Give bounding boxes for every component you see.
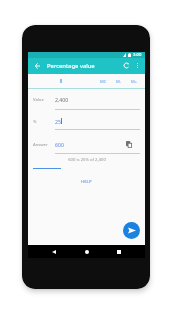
staticText: HELP (81, 178, 92, 184)
button[interactable] (28, 92, 145, 107)
staticText: 600 (55, 141, 64, 148)
staticText: % (33, 119, 37, 125)
staticText: 25 (55, 118, 61, 125)
button[interactable]: M- (113, 76, 125, 88)
button[interactable]: Back (31, 60, 43, 72)
button[interactable]: HELP (77, 176, 96, 186)
button[interactable]: Recents (113, 246, 125, 258)
staticText: Percentage value (47, 62, 95, 70)
staticText: M+ (131, 79, 138, 85)
staticText: Answer (33, 142, 48, 148)
button[interactable]: Home (81, 246, 93, 258)
button[interactable]: More options (131, 59, 143, 71)
staticText: Value (33, 97, 44, 103)
staticText: 600 is 25% of 2,400 (68, 157, 106, 163)
button[interactable]: Copy (123, 139, 134, 150)
button[interactable] (28, 114, 145, 129)
button[interactable]: Refresh (120, 59, 132, 71)
button[interactable]: Calculate (123, 222, 140, 239)
button[interactable]: Back (48, 246, 60, 258)
staticText: MC (100, 79, 107, 85)
staticText: M- (116, 79, 122, 85)
staticText: 2,400 (55, 96, 69, 103)
button[interactable] (28, 137, 145, 152)
button[interactable]: M+ (128, 76, 140, 88)
staticText: 3:00 (133, 52, 142, 58)
button[interactable]: MC (97, 76, 109, 88)
